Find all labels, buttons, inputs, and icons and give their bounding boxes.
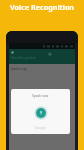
staticText: Voice Recognition [11, 56, 37, 60]
staticText: Voice Recognition [10, 2, 75, 12]
staticText: Google [35, 126, 46, 130]
staticText: Speak to app [11, 67, 27, 71]
staticText: Speak now [32, 94, 49, 98]
button[interactable]: Microphone [34, 106, 48, 120]
